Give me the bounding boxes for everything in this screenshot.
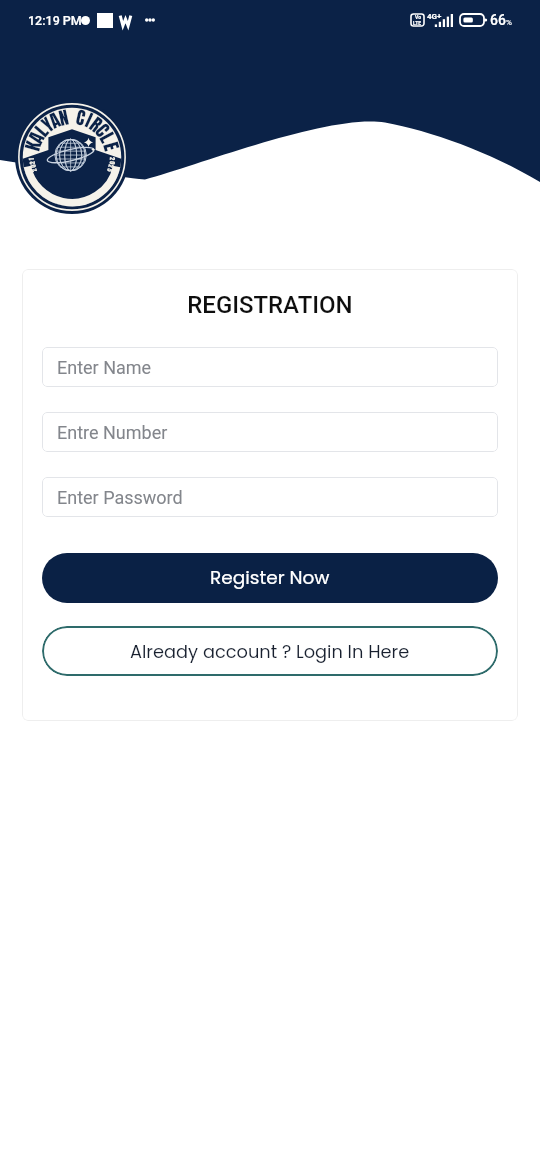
staticText: Enter Password [57,487,183,508]
staticText: Entre Number [57,422,168,443]
staticText: Vo [415,14,421,20]
button[interactable]: Register Now [42,553,498,603]
other: Kalyan Circle logo [15,100,129,214]
button[interactable]: Entre Number [42,412,498,452]
staticText: % [506,18,512,27]
button[interactable]: Enter Name [42,347,498,387]
button[interactable]: Enter Password [42,477,498,517]
staticText: Register Now [210,565,330,591]
staticText: Already account ? Login In Here [130,639,410,664]
staticText: REGISTRATION [22,291,518,319]
staticText: LTE [413,20,422,26]
button[interactable]: Already account ? Login In Here [42,626,498,676]
staticText: Enter Name [57,357,152,378]
staticText: 12:19 PM [28,13,82,28]
staticText: 66 [490,12,506,28]
staticText: 4G+ [427,12,442,21]
